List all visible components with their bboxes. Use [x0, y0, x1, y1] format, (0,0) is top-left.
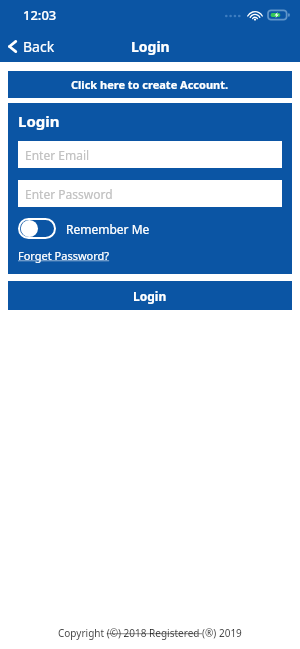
staticText: Login [133, 288, 167, 304]
staticText: Remember Me [66, 221, 150, 237]
button[interactable]: Remember Me switch, off [18, 218, 150, 239]
button[interactable]: Login [8, 281, 292, 310]
staticText: Enter Email [25, 147, 90, 163]
other: Remember Me switch, off [18, 218, 56, 239]
staticText: Login [18, 111, 60, 131]
button[interactable]: Back [0, 32, 67, 61]
button[interactable]: Click here to create Account. [8, 71, 292, 98]
staticText: Copyright (©) 2018 Registered (®) 2019 [58, 626, 242, 640]
button[interactable]: Forget Password? [18, 248, 110, 263]
staticText: Back [23, 37, 55, 56]
staticText: 12:03 [23, 6, 57, 24]
staticText: Forget Password? [18, 248, 110, 263]
button[interactable]: Enter Email [18, 141, 282, 168]
button[interactable]: Enter Password [18, 180, 282, 207]
staticText: Click here to create Account. [71, 77, 229, 92]
staticText: Enter Password [25, 186, 113, 202]
staticText: Login [131, 37, 170, 56]
